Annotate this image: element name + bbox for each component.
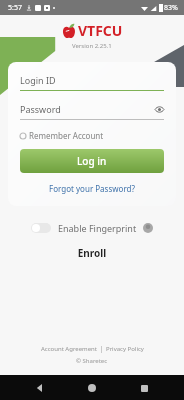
- button[interactable]: Password: [20, 103, 164, 120]
- staticText: Version 2.25.1: [72, 42, 112, 50]
- button[interactable]: Forgot your Password?: [20, 183, 164, 194]
- button[interactable]: Enable Fingerprint toggle: [31, 223, 51, 233]
- staticText: VTFCU: [78, 21, 123, 40]
- button[interactable]: Remember Account: [20, 130, 104, 141]
- button[interactable]: Account Agreement: [41, 345, 97, 353]
- button[interactable]: Fingerprint: [143, 223, 153, 233]
- staticText: Password: [20, 103, 155, 115]
- button[interactable]: Back: [28, 376, 52, 400]
- staticText: 5:57: [8, 3, 22, 13]
- button[interactable]: Home: [80, 376, 104, 400]
- other: Show password: [155, 105, 164, 114]
- staticText: © Sharetec: [76, 357, 108, 365]
- button[interactable]: Login ID: [20, 74, 164, 91]
- staticText: 83%: [164, 3, 178, 13]
- button[interactable]: Enroll: [0, 246, 184, 260]
- button[interactable]: Privacy Policy: [106, 345, 144, 353]
- button[interactable]: Log in: [20, 149, 164, 173]
- staticText: Log in: [77, 154, 107, 168]
- staticText: Remember Account: [29, 130, 104, 141]
- staticText: Login ID: [20, 74, 164, 86]
- button[interactable]: Recents: [132, 376, 156, 400]
- staticText: Enable Fingerprint: [58, 222, 137, 234]
